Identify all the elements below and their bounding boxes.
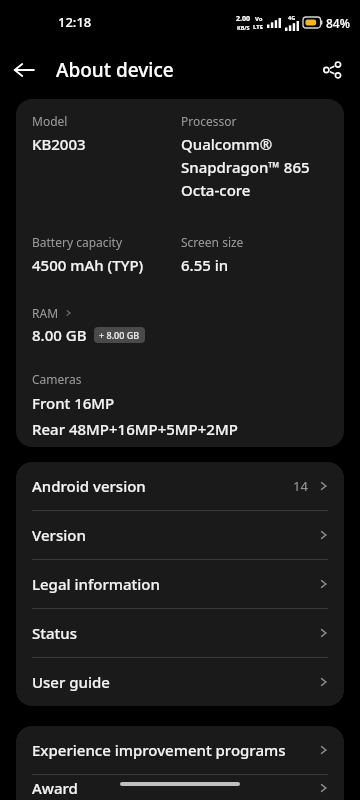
staticText: Vo [255,15,263,23]
staticText: KB/S [237,24,250,31]
button[interactable]: Share [308,46,356,94]
staticText: Octa-core [181,180,251,200]
staticText: Model [32,113,68,129]
staticText: 84% [326,15,350,31]
staticText: Award [32,778,78,798]
button[interactable]: Android version [16,462,344,510]
staticText: 4500 mAh (TYP) [32,255,144,275]
button[interactable]: Experience improvement programs [16,726,344,774]
staticText: Screen size [181,234,244,250]
staticText: Experience improvement programs [32,740,286,760]
staticText: Battery capacity [32,234,123,250]
staticText: RAM [32,305,59,321]
staticText: 8.00 GB [32,325,87,345]
staticText: Android version [32,476,146,496]
button[interactable]: Back [0,46,48,94]
button[interactable]: RAM [32,305,73,321]
staticText: Cameras [32,371,82,387]
button[interactable]: Legal information [16,560,344,608]
staticText: About device [56,57,174,83]
button[interactable]: Award [16,775,344,800]
staticText: Rear 48MP+16MP+5MP+2MP [32,419,238,439]
staticText: Qualcomm® [181,134,273,154]
staticText: Processor [181,113,237,129]
staticText: 12:18 [58,13,92,31]
staticText: 6.55 in [181,255,229,275]
button[interactable]: Version [16,511,344,559]
staticText: Version [32,525,86,545]
staticText: Status [32,623,78,643]
staticText: 2.00 [236,14,250,24]
staticText: KB2003 [32,134,86,154]
staticText: Snapdragon™ 865 [181,157,310,177]
staticText: User guide [32,672,110,692]
button[interactable]: User guide [16,658,344,706]
staticText: Front 16MP [32,393,115,413]
staticText: 14 [293,477,308,495]
staticText: 4G [288,14,296,21]
button[interactable]: Status [16,609,344,657]
staticText: + 8.00 GB [99,329,140,341]
staticText: LTE [253,23,264,31]
staticText: Legal information [32,574,160,594]
